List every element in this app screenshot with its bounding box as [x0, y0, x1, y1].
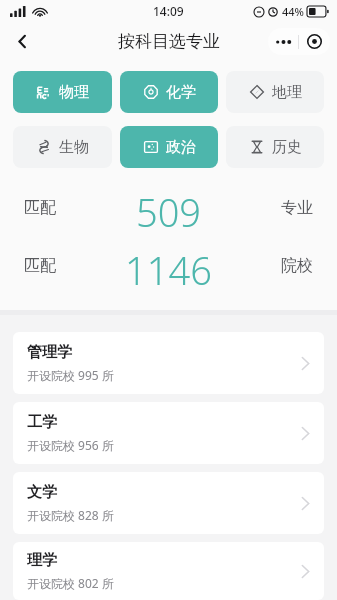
staticText: 院校 [281, 256, 313, 276]
button[interactable]: 化学 [120, 71, 218, 113]
staticText: 政治 [166, 138, 196, 157]
staticText: 专业 [281, 198, 313, 218]
button[interactable]: Close [299, 28, 330, 55]
staticText: 1146 [56, 244, 281, 288]
staticText: 开设院校 956 所 [27, 437, 114, 453]
button[interactable]: Back [4, 23, 40, 59]
button[interactable]: More [268, 28, 298, 55]
staticText: 开设院校 828 所 [27, 507, 114, 523]
staticText: 开设院校 995 所 [27, 367, 114, 383]
button[interactable]: 文学 [13, 472, 324, 534]
staticText: 匹配 [24, 198, 56, 218]
staticText: 化学 [166, 83, 196, 102]
button[interactable]: 历史 [226, 126, 324, 168]
staticText: 历史 [272, 138, 302, 157]
staticText: 按科目选专业 [118, 31, 220, 52]
staticText: 开设院校 802 所 [27, 575, 114, 591]
button[interactable]: 理学 [13, 542, 324, 600]
staticText: 管理学 [27, 343, 72, 362]
button[interactable]: 物理 [13, 71, 112, 113]
staticText: 匹配 [24, 256, 56, 276]
button[interactable]: 工学 [13, 402, 324, 464]
button[interactable]: 生物 [13, 126, 112, 168]
staticText: 14:09 [153, 3, 184, 19]
staticText: 509 [56, 186, 281, 230]
button[interactable]: 政治 [120, 126, 218, 168]
button[interactable]: 地理 [226, 71, 324, 113]
staticText: 理学 [27, 551, 57, 570]
staticText: 物理 [59, 83, 89, 102]
staticText: 地理 [272, 83, 302, 102]
staticText: 文学 [27, 483, 57, 502]
staticText: 生物 [59, 138, 89, 157]
staticText: 工学 [27, 413, 57, 432]
button[interactable]: 管理学 [13, 332, 324, 394]
staticText: 44% [282, 4, 304, 19]
